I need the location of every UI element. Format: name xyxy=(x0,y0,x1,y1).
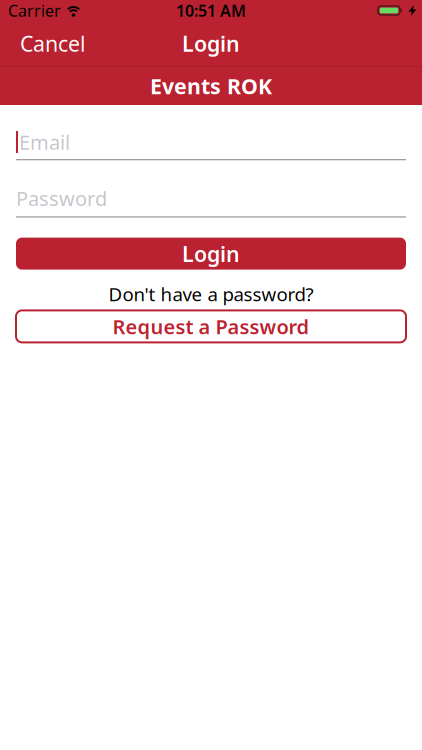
staticText: Login xyxy=(182,239,240,268)
staticText: Carrier xyxy=(8,0,61,21)
staticText: Events ROK xyxy=(150,72,272,100)
button[interactable]: Email xyxy=(16,131,406,160)
button[interactable]: Password xyxy=(16,160,406,218)
staticText: Cancel xyxy=(20,29,86,58)
button[interactable]: Cancel xyxy=(0,19,86,68)
staticText: Email xyxy=(19,129,70,155)
staticText: Login xyxy=(182,29,240,58)
staticText: Password xyxy=(16,185,107,212)
staticText: 10:51 AM xyxy=(176,0,246,21)
staticText: Don't have a password? xyxy=(108,282,313,306)
button[interactable]: Login xyxy=(16,238,406,270)
staticText: Request a Password xyxy=(112,313,309,340)
button[interactable]: Request a Password xyxy=(16,310,406,342)
